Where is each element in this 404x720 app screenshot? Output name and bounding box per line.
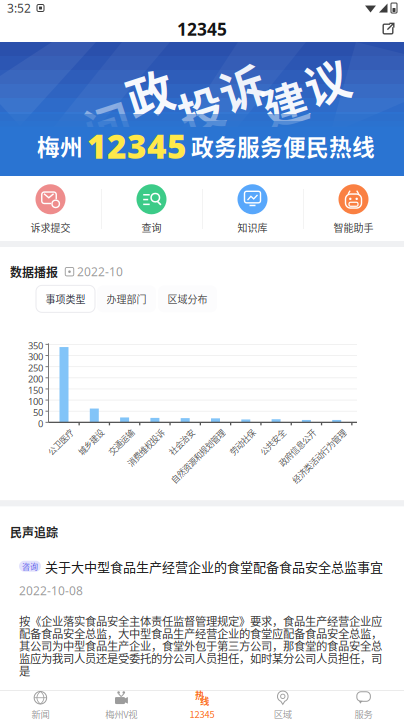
staticText: 数据播报 — [10, 263, 58, 280]
button[interactable]: 办理部门 — [97, 285, 156, 312]
button[interactable]: 诉求提交 — [0, 174, 101, 243]
staticText: 2022-10 — [77, 264, 123, 280]
staticText: 政府信息公开 — [263, 426, 311, 438]
staticText: 咨询 — [22, 560, 38, 572]
staticText: 150 — [28, 384, 43, 396]
staticText: 诉 — [219, 54, 264, 120]
staticText: 350 — [28, 339, 43, 352]
staticText: 服务 — [355, 707, 373, 720]
staticText: 诉求提交 — [30, 220, 70, 235]
staticText: 劳动社保 — [218, 426, 250, 438]
button[interactable]: 服务 — [323, 687, 404, 720]
button[interactable]: 查询 — [101, 174, 202, 243]
staticText: 知识库 — [237, 220, 267, 235]
staticText: 交通运输 — [97, 426, 129, 438]
button[interactable]: 区域分布 — [158, 285, 217, 312]
staticText: 3:52 — [7, 0, 31, 16]
staticText: 2022-10-08 — [19, 583, 83, 599]
staticText: 区域分布 — [167, 292, 207, 306]
staticText: 智能助手 — [333, 220, 373, 235]
staticText: 关于大中型食品生产经营企业的食堂配备食品安全总监事宜 — [45, 557, 383, 576]
staticText: 民声追踪 — [10, 523, 58, 541]
staticText: 议 — [304, 48, 349, 114]
staticText: 50 — [33, 406, 43, 419]
button[interactable]: 新闻 — [0, 687, 81, 720]
staticText: 公共安全 — [249, 426, 281, 438]
button[interactable]: 热 — [162, 687, 242, 720]
staticText: 社会治安 — [158, 426, 190, 438]
staticText: 300 — [28, 350, 43, 363]
staticText: 250 — [28, 362, 43, 374]
button[interactable]: 事项类型 — [36, 285, 95, 312]
button[interactable]: 区域 — [242, 687, 323, 720]
staticText: 城乡建设 — [67, 426, 99, 438]
staticText: 消费维权投诉 — [111, 426, 159, 438]
button[interactable]: 智能助手 — [303, 174, 404, 243]
staticText: 公卫医疗 — [36, 426, 68, 438]
staticText: 12345 — [177, 17, 227, 40]
staticText: 12345 — [189, 707, 214, 720]
staticText: 问 — [84, 90, 131, 158]
staticText: 200 — [28, 373, 43, 385]
staticText: 12345 — [87, 124, 187, 168]
staticText: 100 — [28, 395, 43, 407]
staticText: 自然资源和规划管理 — [148, 426, 220, 438]
button[interactable]: 咨询 — [0, 557, 404, 599]
staticText: 0 — [38, 417, 43, 430]
staticText: 建 — [262, 70, 307, 136]
staticText: 经济类活动行为管理 — [269, 426, 341, 438]
staticText: 热 — [195, 688, 204, 701]
staticText: 线 — [200, 694, 209, 707]
staticText: 办理部门 — [106, 292, 146, 306]
staticText: 梅州V视 — [105, 707, 137, 720]
staticText: 事项类型 — [45, 292, 85, 306]
staticText: 投 — [178, 76, 223, 142]
staticText: 梅州 — [37, 129, 83, 162]
staticText: 查询 — [141, 220, 161, 235]
staticText: 区域 — [274, 707, 292, 720]
staticText: 政 — [126, 58, 173, 126]
button[interactable]: 梅州V视 — [81, 687, 162, 720]
button[interactable]: 分享 — [372, 17, 404, 41]
button[interactable]: 知识库 — [202, 174, 303, 243]
staticText: 政务服务便民热线 — [191, 129, 375, 162]
staticText: 按《企业落实食品安全主体责任监督管理规定》要求，食品生产经营企业应配备食品安全总… — [19, 613, 382, 679]
staticText: 新闻 — [31, 707, 49, 720]
